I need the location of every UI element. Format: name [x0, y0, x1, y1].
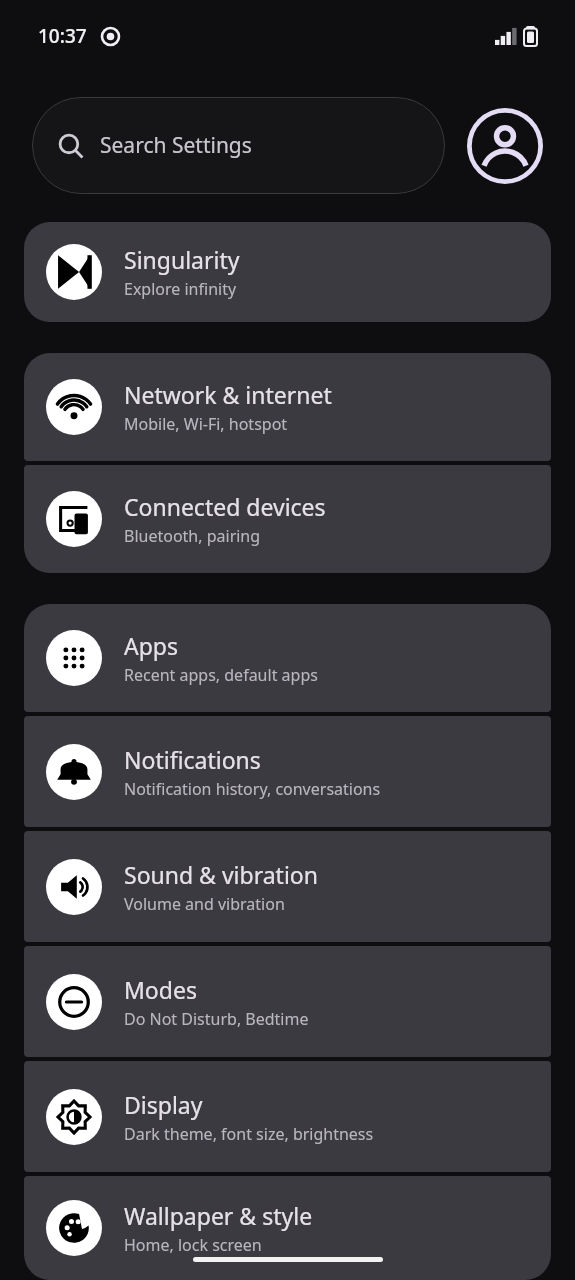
button[interactable]: Apps: [24, 604, 551, 712]
button[interactable]: Account: [467, 108, 543, 184]
staticText: Do Not Disturb, Bedtime: [124, 1008, 309, 1030]
staticText: Bluetooth, pairing: [124, 525, 261, 547]
staticText: Search Settings: [100, 131, 252, 160]
staticText: Connected devices: [124, 491, 326, 522]
staticText: Notifications: [124, 744, 261, 775]
button[interactable]: Wallpaper & style: [24, 1176, 551, 1280]
button[interactable]: Modes: [24, 946, 551, 1057]
staticText: Singularity: [124, 244, 240, 275]
button[interactable]: Network & internet: [24, 353, 551, 461]
staticText: Network & internet: [124, 379, 332, 410]
staticText: Modes: [124, 974, 197, 1005]
staticText: Wallpaper & style: [124, 1200, 313, 1231]
staticText: Notification history, conversations: [124, 778, 381, 800]
button[interactable]: Singularity: [24, 222, 551, 322]
staticText: Apps: [124, 630, 179, 661]
staticText: Explore infinity: [124, 278, 237, 300]
staticText: Display: [124, 1089, 203, 1120]
button[interactable]: Connected devices: [24, 465, 551, 573]
staticText: Recent apps, default apps: [124, 664, 318, 686]
staticText: Volume and vibration: [124, 893, 285, 915]
button[interactable]: Sound & vibration: [24, 831, 551, 942]
staticText: Home, lock screen: [124, 1234, 262, 1256]
staticText: Sound & vibration: [124, 859, 318, 890]
button[interactable]: Display: [24, 1061, 551, 1172]
staticText: Mobile, Wi-Fi, hotspot: [124, 413, 288, 435]
button[interactable]: Notifications: [24, 716, 551, 827]
staticText: 10:37: [38, 23, 87, 49]
staticText: Dark theme, font size, brightness: [124, 1123, 374, 1145]
button[interactable]: Search Settings: [32, 97, 445, 194]
